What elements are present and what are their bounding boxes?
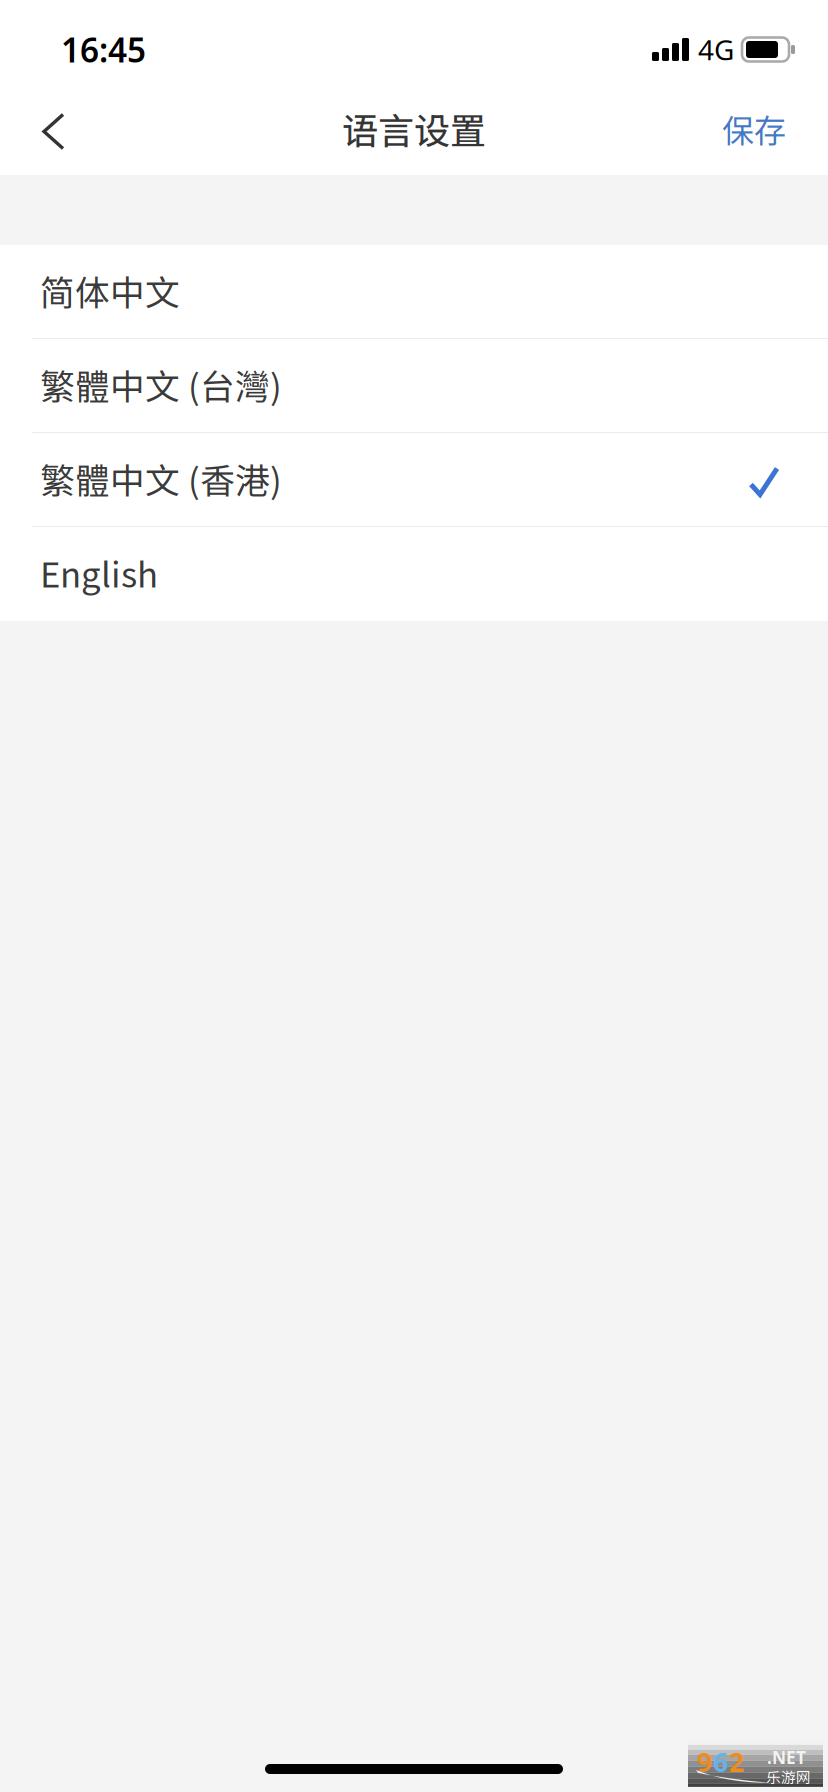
staticText: 9: [697, 1744, 712, 1779]
button[interactable]: English: [0, 527, 828, 621]
staticText: 繁體中文 (香港): [40, 453, 282, 504]
button[interactable]: 繁體中文 (台灣): [0, 339, 828, 433]
staticText: 保存: [722, 105, 786, 152]
button[interactable]: 简体中文: [0, 245, 828, 339]
staticText: 简体中文: [40, 265, 180, 316]
staticText: 16:45: [61, 27, 146, 72]
button[interactable]: 繁體中文 (香港): [0, 433, 828, 527]
staticText: 2: [729, 1744, 744, 1779]
button[interactable]: Back: [0, 88, 112, 175]
staticText: .NET: [767, 1746, 806, 1769]
staticText: 繁體中文 (台灣): [40, 359, 282, 410]
staticText: 4G: [698, 31, 734, 68]
staticText: 语言设置: [342, 102, 486, 154]
staticText: 6: [713, 1744, 728, 1779]
button[interactable]: 保存: [678, 88, 828, 175]
staticText: English: [40, 547, 158, 598]
staticText: 乐游网: [766, 1766, 811, 1787]
